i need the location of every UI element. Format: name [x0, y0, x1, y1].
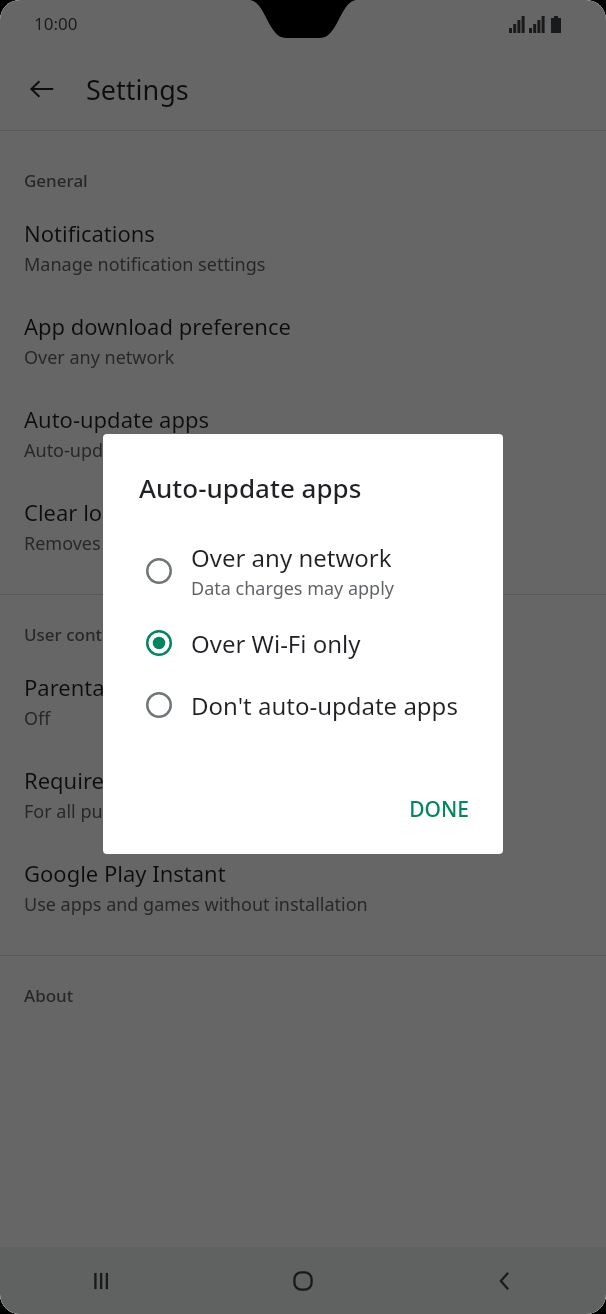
staticText: Data charges may apply	[191, 576, 395, 601]
button[interactable]: Over any network	[103, 537, 503, 605]
button[interactable]: Auto-update apps	[0, 382, 606, 475]
staticText: Settings	[86, 71, 189, 108]
staticText: For all purchases through Google Play on…	[24, 799, 466, 824]
staticText: Removes all searches you have performed …	[24, 531, 502, 556]
staticText: Parental controls	[24, 672, 200, 702]
staticText: Auto-update apps	[24, 404, 209, 434]
staticText: Don't auto-update apps	[191, 689, 458, 722]
button[interactable]: Recent apps	[0, 1247, 202, 1314]
staticText: 10:00	[34, 12, 78, 35]
staticText: General	[24, 169, 88, 192]
button[interactable]: Google Play Instant	[0, 836, 606, 929]
staticText: Require authentication for purchases	[24, 765, 408, 795]
staticText: Use apps and games without installation	[24, 892, 368, 917]
staticText: Manage notification settings	[24, 252, 266, 277]
staticText: Over any network	[24, 345, 175, 370]
button[interactable]: Home	[202, 1247, 404, 1314]
button[interactable]: Require authentication for purchases	[0, 743, 606, 836]
button[interactable]: Back	[404, 1247, 606, 1314]
button[interactable]: DONE	[395, 787, 483, 832]
button[interactable]: Back	[18, 65, 66, 113]
staticText: User controls	[24, 623, 133, 646]
staticText: Google Play Instant	[24, 858, 226, 888]
button[interactable]: Clear local search history	[0, 475, 606, 568]
staticText: Off	[24, 706, 51, 731]
button[interactable]: Parental controls	[0, 650, 606, 743]
staticText: Auto-update apps	[139, 470, 362, 505]
staticText: Clear local search history	[24, 497, 282, 527]
staticText: Over any network	[191, 541, 392, 574]
staticText: Over Wi-Fi only	[191, 627, 361, 660]
staticText: Notifications	[24, 218, 155, 248]
button[interactable]: Notifications	[0, 196, 606, 289]
button[interactable]: Over Wi-Fi only	[103, 619, 503, 667]
staticText: About	[24, 984, 74, 1007]
button[interactable]: App download preference	[0, 289, 606, 382]
button[interactable]: Don't auto-update apps	[103, 681, 503, 729]
staticText: Auto-update apps over Wi-Fi only	[24, 438, 304, 463]
staticText: DONE	[409, 795, 469, 824]
staticText: App download preference	[24, 311, 291, 341]
